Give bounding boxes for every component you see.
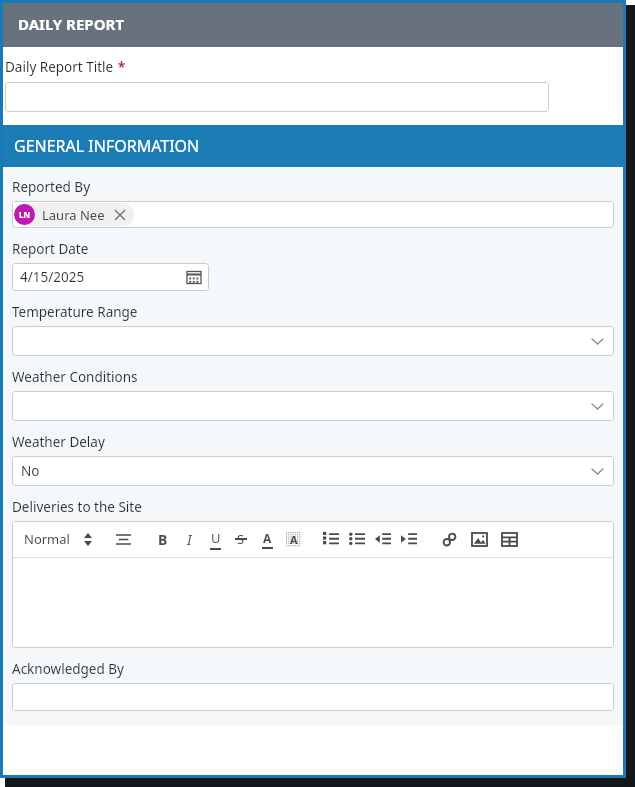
staticText: Acknowledged By bbox=[12, 660, 124, 678]
button[interactable]: Bold bbox=[150, 525, 176, 553]
staticText: Daily Report Title bbox=[5, 58, 114, 76]
other: Open calendar bbox=[187, 270, 201, 284]
button[interactable]: Underline bbox=[202, 525, 228, 553]
button[interactable]: Numbered list bbox=[318, 525, 344, 553]
button[interactable] bbox=[12, 558, 614, 648]
staticText: * bbox=[114, 57, 126, 76]
staticText: Temperature Range bbox=[12, 303, 138, 321]
button[interactable]: Strikethrough bbox=[228, 525, 254, 553]
button[interactable]: Insert table bbox=[496, 525, 522, 553]
staticText: GENERAL INFORMATION bbox=[14, 135, 200, 157]
button[interactable]: Normal bbox=[20, 530, 96, 548]
button[interactable] bbox=[12, 391, 614, 421]
button[interactable] bbox=[12, 683, 614, 711]
staticText: Weather Conditions bbox=[12, 368, 138, 386]
staticText: Report Date bbox=[12, 240, 89, 258]
button[interactable]: Increase indent bbox=[396, 525, 422, 553]
staticText: I bbox=[187, 530, 192, 549]
staticText: A bbox=[263, 530, 272, 546]
staticText: A bbox=[290, 532, 298, 547]
staticText: Weather Delay bbox=[12, 433, 105, 451]
button[interactable]: No bbox=[12, 456, 614, 486]
button[interactable]: Highlight color bbox=[280, 525, 306, 553]
button[interactable]: Bulleted list bbox=[344, 525, 370, 553]
staticText: Deliveries to the Site bbox=[12, 498, 142, 516]
button[interactable]: 4/15/2025 bbox=[12, 263, 209, 291]
button[interactable]: Decrease indent bbox=[370, 525, 396, 553]
staticText: B bbox=[158, 530, 168, 549]
staticText: Reported By bbox=[12, 178, 91, 196]
staticText: U bbox=[211, 529, 221, 547]
staticText: Laura Nee bbox=[42, 206, 105, 224]
staticText: Normal bbox=[24, 530, 70, 548]
staticText: DAILY REPORT bbox=[18, 14, 125, 34]
staticText: LN bbox=[19, 209, 30, 220]
button[interactable]: LN bbox=[12, 201, 614, 228]
button[interactable]: Italic bbox=[176, 525, 202, 553]
button[interactable]: Align bbox=[110, 525, 136, 553]
button[interactable]: Insert image bbox=[466, 525, 492, 553]
staticText: No bbox=[21, 462, 40, 480]
button[interactable]: Remove Laura Nee bbox=[114, 209, 126, 221]
button[interactable] bbox=[5, 82, 549, 112]
button[interactable]: Text color bbox=[254, 525, 280, 553]
staticText: S bbox=[237, 530, 245, 548]
staticText: 4/15/2025 bbox=[20, 268, 85, 286]
button[interactable] bbox=[12, 326, 614, 356]
button[interactable]: Insert link bbox=[436, 525, 462, 553]
